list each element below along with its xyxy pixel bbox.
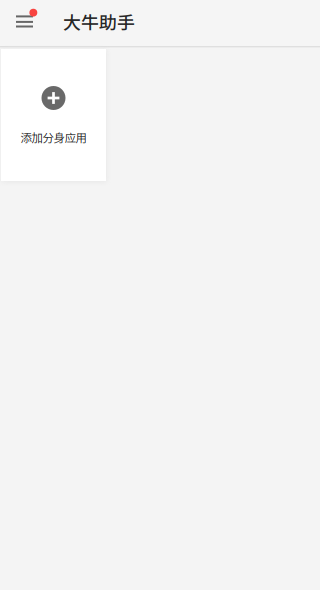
staticText: 添加分身应用 — [20, 129, 86, 146]
button[interactable]: Menu — [0, 0, 49, 46]
staticText: 大牛助手 — [63, 9, 135, 34]
button[interactable]: 添加分身应用 — [1, 49, 106, 181]
